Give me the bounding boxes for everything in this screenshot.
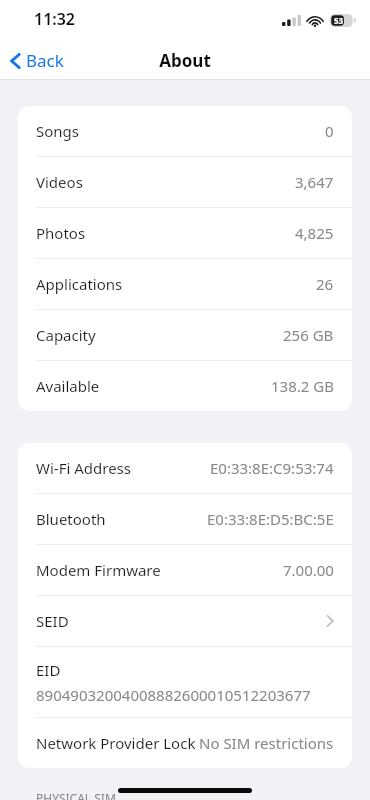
- staticText: 7.00.00: [283, 560, 334, 580]
- button[interactable]: SEID: [18, 596, 352, 646]
- other: Open SEID: [326, 614, 334, 628]
- staticText: SEID: [36, 611, 69, 631]
- button[interactable]: Wi-Fi Address: [18, 443, 352, 493]
- button[interactable]: Bluetooth: [18, 494, 352, 544]
- staticText: Videos: [36, 172, 83, 192]
- staticText: Photos: [36, 223, 86, 243]
- button[interactable]: Photos: [18, 208, 352, 258]
- staticText: Capacity: [36, 325, 96, 345]
- button[interactable]: Network Provider Lock: [18, 718, 352, 768]
- staticText: PHYSICAL SIM: [36, 790, 116, 800]
- button[interactable]: EID: [18, 647, 352, 717]
- button[interactable]: Capacity: [18, 310, 352, 360]
- staticText: 53: [334, 15, 344, 26]
- staticText: No SIM restrictions: [199, 733, 334, 753]
- staticText: Applications: [36, 274, 123, 294]
- staticText: E0:33:8E:C9:53:74: [210, 458, 334, 478]
- staticText: Back: [26, 49, 64, 72]
- staticText: Bluetooth: [36, 509, 106, 529]
- staticText: 4,825: [295, 223, 334, 243]
- button[interactable]: Songs: [18, 106, 352, 156]
- staticText: 256 GB: [283, 325, 334, 345]
- staticText: 26: [316, 274, 334, 294]
- staticText: About: [159, 49, 211, 72]
- staticText: 89049032004008882600010512203677: [36, 685, 311, 705]
- staticText: Wi-Fi Address: [36, 458, 131, 478]
- button[interactable]: Videos: [18, 157, 352, 207]
- staticText: Available: [36, 376, 100, 396]
- staticText: Songs: [36, 121, 79, 141]
- staticText: Network Provider Lock: [36, 733, 196, 753]
- staticText: 138.2 GB: [271, 376, 334, 396]
- button[interactable]: Available: [18, 361, 352, 411]
- button[interactable]: Applications: [18, 259, 352, 309]
- staticText: 3,647: [295, 172, 334, 192]
- button[interactable]: Modem Firmware: [18, 545, 352, 595]
- staticText: 0: [325, 121, 334, 141]
- staticText: Modem Firmware: [36, 560, 161, 580]
- staticText: 11:32: [34, 8, 76, 30]
- staticText: E0:33:8E:D5:BC:5E: [207, 509, 334, 529]
- button[interactable]: Back: [0, 43, 76, 78]
- staticText: EID: [36, 660, 61, 680]
